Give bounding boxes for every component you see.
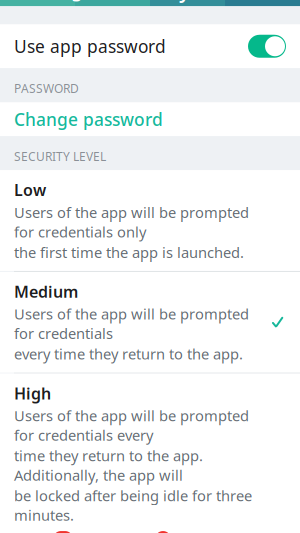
staticText: High bbox=[14, 383, 51, 404]
staticText: every time they return to the app. bbox=[14, 344, 243, 364]
staticText: SECURITY LEVEL bbox=[14, 148, 106, 164]
staticText: Security bbox=[110, 0, 190, 4]
button[interactable]: Medium bbox=[0, 272, 300, 373]
button[interactable]: Settings bbox=[0, 0, 100, 9]
button[interactable]: Low bbox=[0, 170, 300, 271]
staticText: Medium bbox=[14, 281, 78, 302]
staticText: Settings bbox=[19, 0, 92, 3]
staticText: time they return to the app. Additionall… bbox=[14, 446, 203, 485]
button[interactable]: Change password bbox=[0, 102, 300, 136]
staticText: be locked after being idle for three min… bbox=[14, 486, 252, 525]
staticText: the first time the app is launched. bbox=[14, 242, 244, 262]
staticText: Users of the app will be prompted for cr… bbox=[14, 202, 249, 241]
staticText: Users of the app will be prompted for cr… bbox=[14, 304, 249, 343]
staticText: Change password bbox=[14, 108, 163, 131]
staticText: Low bbox=[14, 179, 46, 200]
button[interactable]: High bbox=[0, 374, 300, 533]
button[interactable]: Use app password bbox=[0, 24, 300, 68]
staticText: Users of the app will be prompted for cr… bbox=[14, 406, 249, 445]
staticText: Use app password bbox=[14, 35, 166, 58]
staticText: PASSWORD bbox=[14, 80, 79, 96]
